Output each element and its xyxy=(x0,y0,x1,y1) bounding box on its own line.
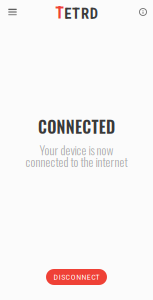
staticText: Your device is now xyxy=(39,141,113,159)
staticText: DISCONNECT xyxy=(53,272,99,282)
staticText: connected to the internet xyxy=(25,153,127,170)
button[interactable]: Information xyxy=(133,0,153,24)
button[interactable]: DISCONNECT xyxy=(46,269,107,285)
staticText: CONNECTED xyxy=(38,115,115,138)
staticText: ETRD xyxy=(64,5,98,22)
button[interactable]: Menu xyxy=(0,0,25,24)
staticText: T xyxy=(55,4,64,22)
